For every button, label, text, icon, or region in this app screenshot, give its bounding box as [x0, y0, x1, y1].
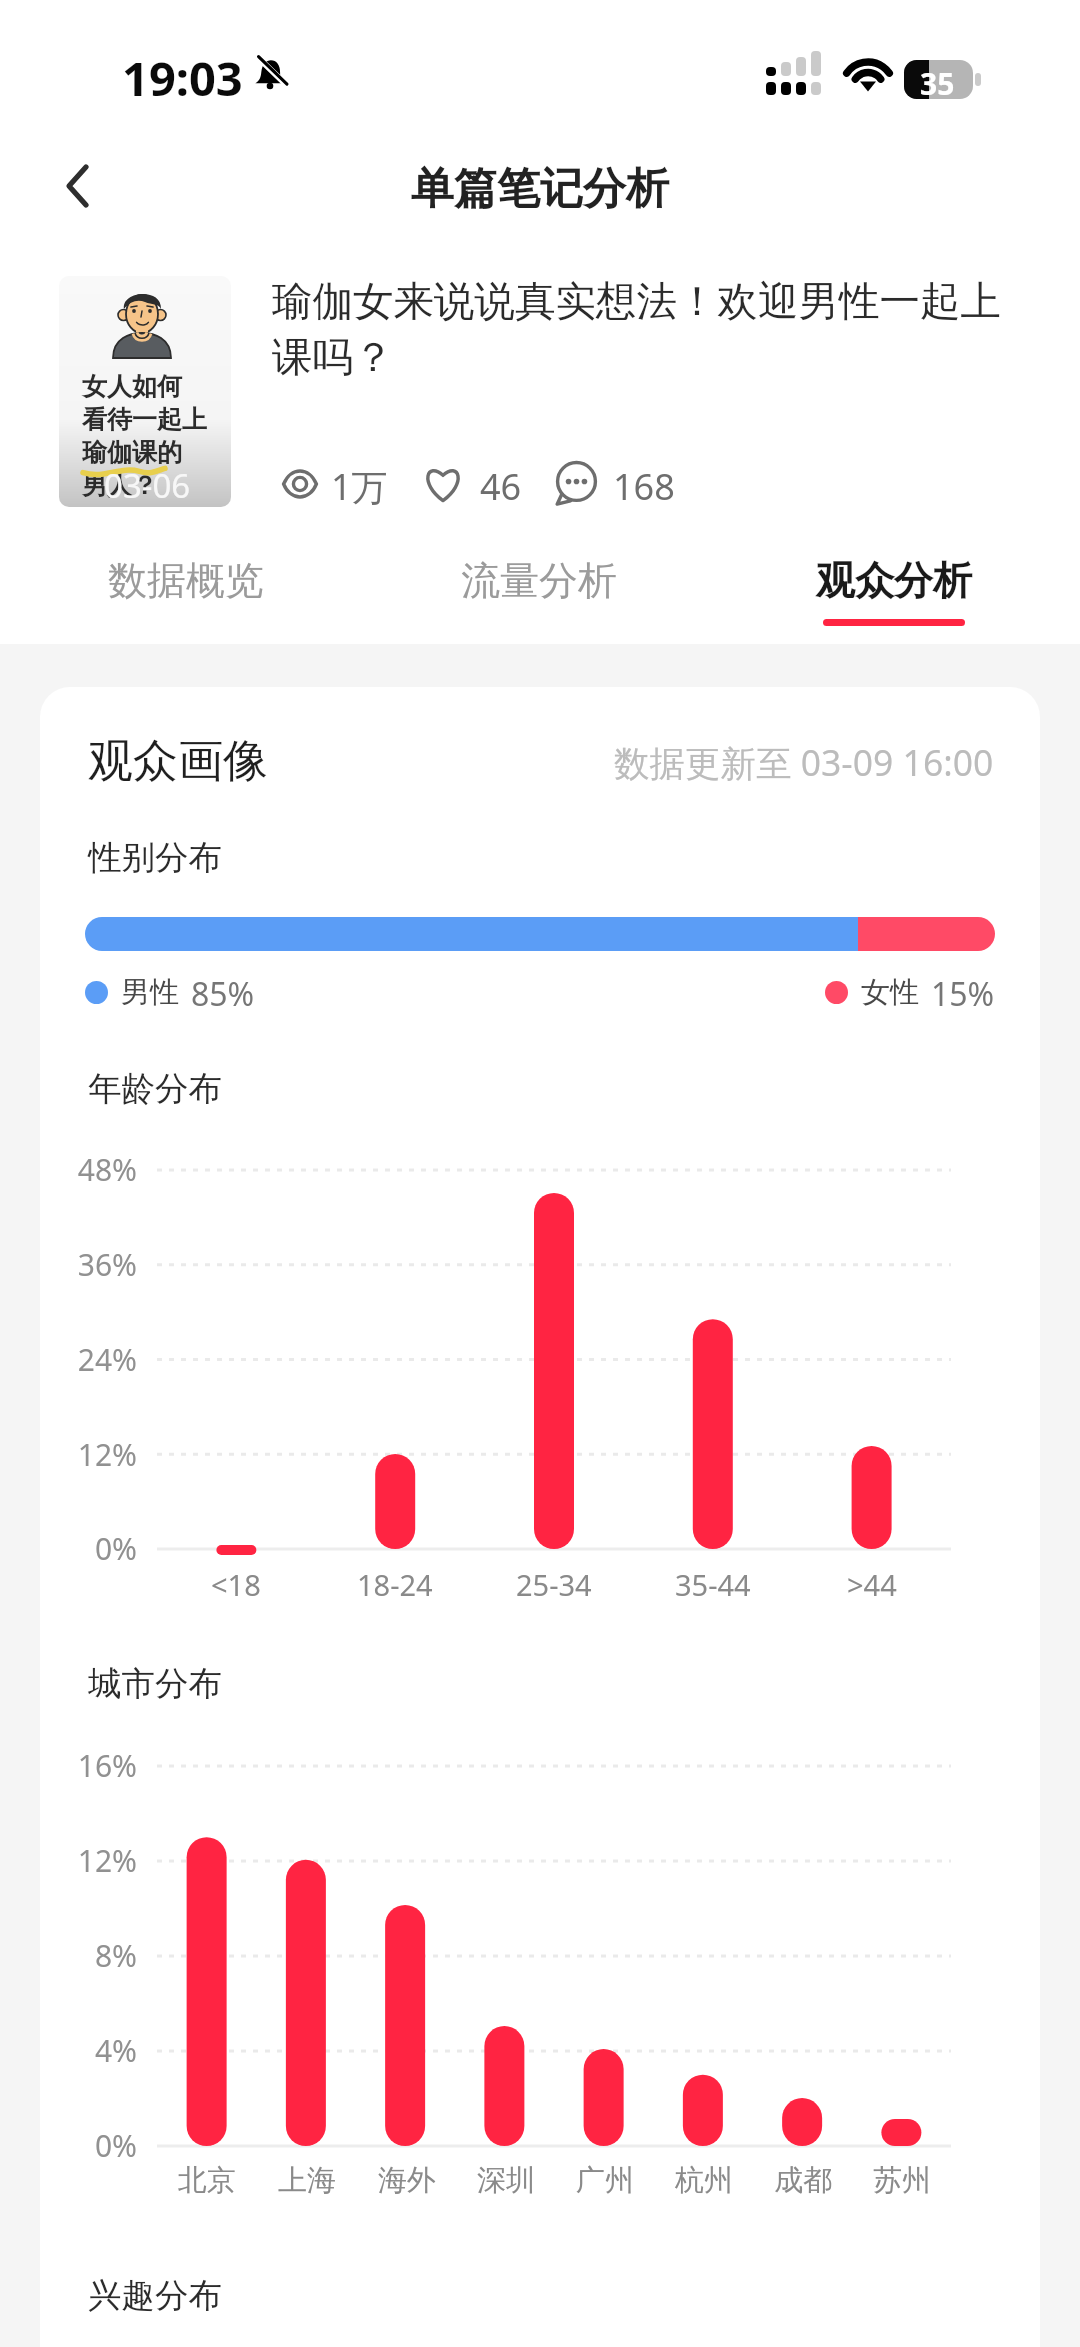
staticText: 03-06 [104, 463, 191, 507]
staticText: 19:03 [122, 46, 243, 110]
button[interactable]: 数据概览 [76, 548, 296, 629]
staticText: 35 [920, 63, 955, 104]
staticText: 35-44 [675, 1565, 751, 1604]
staticText: 瑜伽女来说说真实想法！欢迎男性一起上课吗？ [272, 276, 1012, 383]
staticText: 深圳 [477, 2162, 535, 2199]
button[interactable] [40, 262, 1040, 517]
button[interactable]: 1万 [282, 462, 388, 506]
button[interactable]: 观众分析 [784, 548, 1004, 636]
staticText: 看待一起上 [82, 404, 207, 435]
staticText: 1万 [331, 462, 388, 506]
staticText: 0% [40, 2125, 137, 2166]
staticText: 25-34 [516, 1565, 592, 1604]
staticText: 数据概览 [108, 556, 264, 605]
staticText: 数据更新至 03-09 16:00 [614, 738, 994, 786]
staticText: 24% [40, 1339, 137, 1380]
staticText: 瑜伽课的 [82, 437, 182, 468]
staticText: 女人如何 [82, 371, 182, 402]
staticText: 成都 [774, 2162, 832, 2199]
staticText: 0% [40, 1528, 137, 1569]
staticText: 4% [40, 2030, 137, 2071]
staticText: 单篇笔记分析 [411, 162, 669, 216]
staticText: 兴趣分布 [88, 2275, 222, 2317]
staticText: 85% [191, 972, 255, 1012]
button[interactable]: 流量分析 [429, 548, 649, 629]
staticText: 性别分布 [88, 837, 222, 879]
staticText: 女性 [861, 974, 919, 1011]
staticText: 年龄分布 [88, 1068, 222, 1110]
staticText: 苏州 [873, 2162, 931, 2199]
staticText: 168 [613, 462, 675, 506]
staticText: 广州 [576, 2162, 634, 2199]
staticText: 8% [40, 1935, 137, 1976]
staticText: 36% [40, 1244, 137, 1285]
button[interactable]: 46 [423, 462, 522, 506]
staticText: <18 [211, 1565, 261, 1604]
staticText: 男性 [121, 974, 179, 1011]
staticText: 12% [40, 1434, 137, 1475]
staticText: 观众分析 [816, 556, 972, 605]
staticText: 16% [40, 1745, 137, 1786]
staticText: >44 [847, 1565, 897, 1604]
staticText: 18-24 [357, 1565, 433, 1604]
staticText: 上海 [278, 2162, 336, 2199]
staticText: 观众画像 [88, 733, 268, 790]
staticText: 北京 [178, 2162, 236, 2199]
staticText: 男人？ [82, 470, 157, 501]
staticText: 12% [40, 1840, 137, 1881]
staticText: 流量分析 [461, 556, 617, 605]
button[interactable]: 168 [555, 462, 675, 506]
staticText: 46 [480, 462, 522, 506]
staticText: 杭州 [675, 2162, 733, 2199]
staticText: 48% [40, 1149, 137, 1190]
button[interactable]: Back [36, 144, 120, 228]
staticText: 城市分布 [88, 1663, 222, 1705]
staticText: 海外 [378, 2162, 436, 2199]
staticText: 15% [931, 972, 995, 1012]
